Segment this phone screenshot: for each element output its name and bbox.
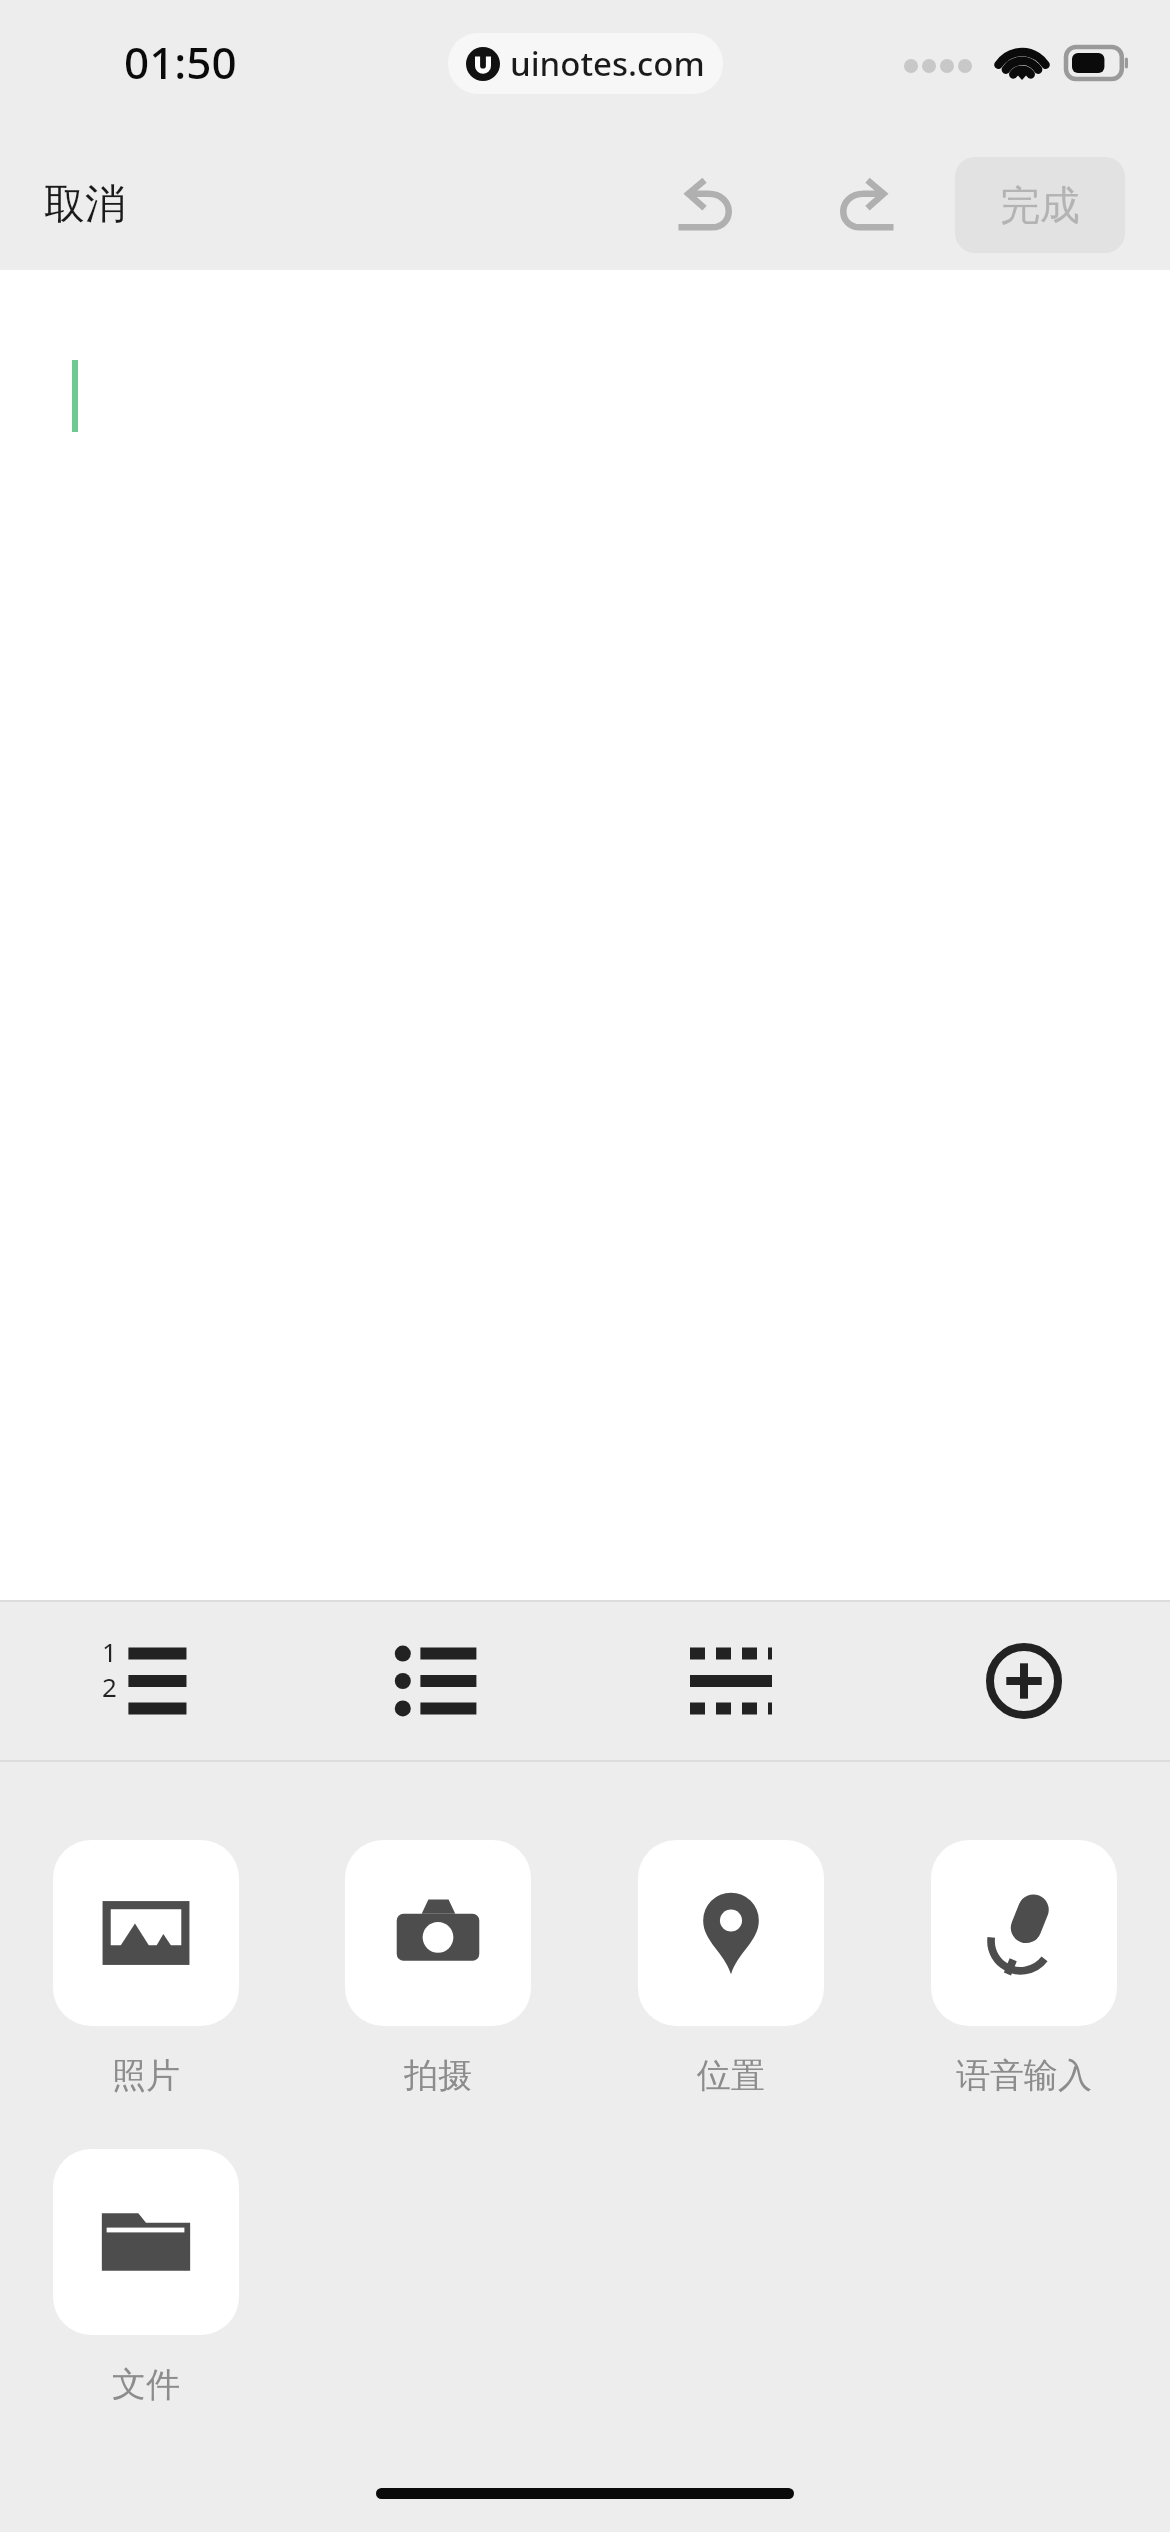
button[interactable]: Numbered list xyxy=(0,1602,292,1760)
staticText: 文件 xyxy=(112,2363,180,2406)
button[interactable]: 位置 xyxy=(584,1840,877,2097)
button[interactable]: 文件 xyxy=(0,2149,292,2406)
button[interactable]: Bulleted list xyxy=(292,1602,584,1760)
staticText: 1 xyxy=(102,1634,117,1669)
button[interactable]: 完成 xyxy=(955,157,1125,253)
button[interactable]: Divider xyxy=(584,1602,877,1760)
staticText: 位置 xyxy=(697,2054,765,2097)
staticText: 01:50 xyxy=(124,32,237,92)
staticText: 完成 xyxy=(1000,180,1080,230)
staticText: 取消 xyxy=(44,179,126,231)
staticText: 2 xyxy=(102,1669,117,1704)
staticText: 语音输入 xyxy=(956,2054,1092,2097)
button[interactable]: Add xyxy=(877,1602,1170,1760)
staticText: 照片 xyxy=(112,2054,180,2097)
button[interactable]: 语音输入 xyxy=(877,1840,1170,2097)
button[interactable]: Undo xyxy=(659,157,755,253)
button[interactable]: Redo xyxy=(817,157,913,253)
button[interactable]: 照片 xyxy=(0,1840,292,2097)
staticText: 拍摄 xyxy=(404,2054,472,2097)
staticText: uinotes.com xyxy=(510,41,705,86)
button[interactable]: 拍摄 xyxy=(292,1840,584,2097)
button[interactable]: 取消 xyxy=(22,161,148,249)
